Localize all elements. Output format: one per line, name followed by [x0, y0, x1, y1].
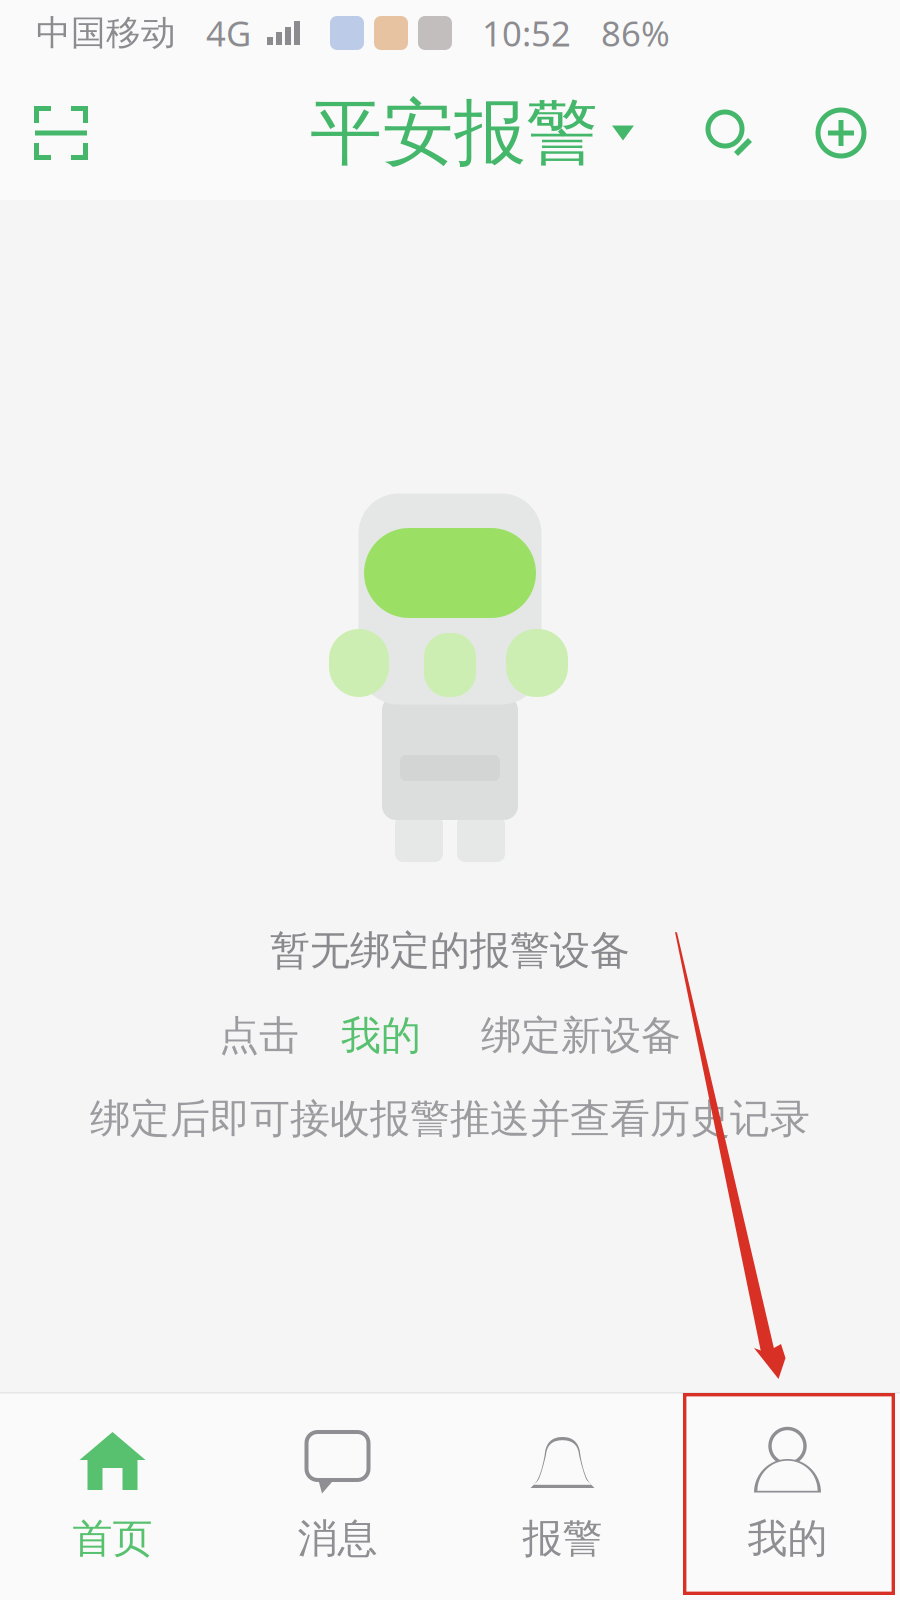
button[interactable]: 首页: [0, 1392, 225, 1600]
staticText: 暂无绑定的报警设备: [270, 926, 630, 975]
staticText: 消息: [297, 1514, 377, 1563]
staticText: 4G: [206, 10, 251, 56]
button[interactable]: 搜索: [696, 66, 762, 200]
button[interactable]: 添加: [808, 66, 874, 200]
staticText: 绑定新设备: [481, 1011, 681, 1060]
staticText: 报警: [522, 1514, 602, 1563]
button[interactable]: 我的: [675, 1392, 900, 1600]
staticText: 86%: [601, 10, 670, 56]
staticText: 我的: [341, 1011, 421, 1060]
staticText: 中国移动: [36, 12, 176, 54]
staticText: 平安报警: [310, 89, 598, 177]
staticText: 绑定后即可接收报警推送并查看历史记录: [90, 1094, 810, 1143]
button[interactable]: 报警: [450, 1392, 675, 1600]
button[interactable]: 扫一扫: [26, 66, 96, 200]
staticText: 点击: [219, 1011, 299, 1060]
staticText: 10:52: [482, 10, 571, 56]
staticText: 我的: [747, 1514, 827, 1563]
button[interactable]: 消息: [225, 1392, 450, 1600]
staticText: 首页: [72, 1514, 152, 1563]
button[interactable]: 平安报警: [310, 66, 634, 200]
